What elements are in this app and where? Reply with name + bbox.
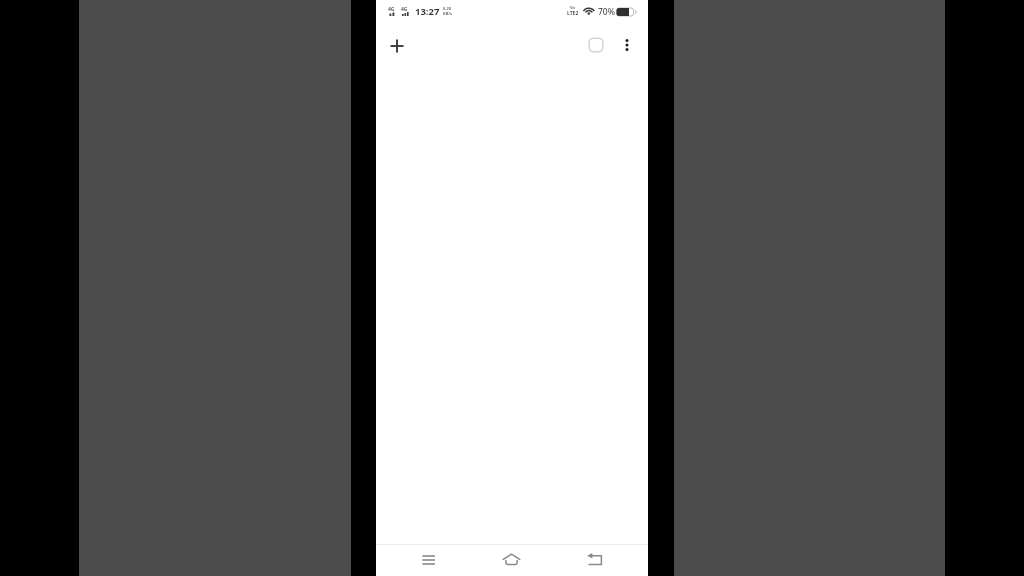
staticText: LTE2 [567, 10, 579, 17]
button[interactable] [611, 29, 643, 61]
button[interactable] [579, 545, 610, 576]
staticText: 4G [401, 6, 408, 13]
staticText: 4G [388, 6, 395, 13]
staticText: 0.20 [443, 6, 451, 11]
staticText: Vo [570, 5, 576, 10]
staticText: 70% [598, 6, 615, 18]
staticText: KB/s [443, 11, 452, 16]
staticText: 13:27 [415, 5, 440, 18]
button[interactable] [496, 545, 527, 576]
button[interactable] [381, 30, 413, 62]
button[interactable] [413, 545, 444, 576]
button[interactable] [580, 29, 612, 61]
